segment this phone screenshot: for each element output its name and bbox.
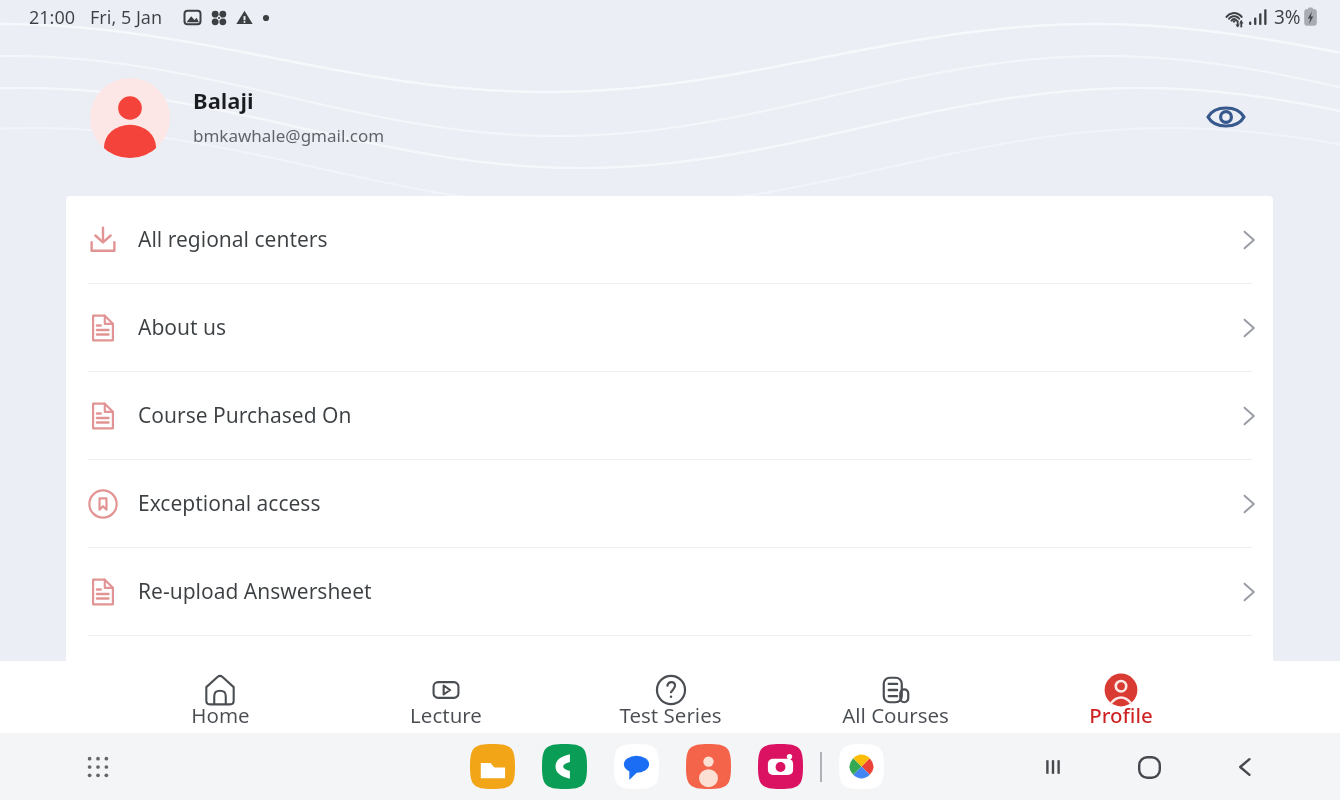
button[interactable]: Phone [542,744,587,789]
staticText: Profile [1089,701,1153,725]
button[interactable]: Re-upload Answersheet [66,548,1273,636]
button[interactable]: Privacy policy [66,636,1273,724]
button[interactable]: Profile [1008,661,1233,733]
button[interactable]: All Courses [783,661,1008,733]
button[interactable]: Course Purchased On [66,372,1273,460]
button[interactable]: Messages [614,744,659,789]
button[interactable]: Back [1222,744,1268,790]
staticText: 3% [1274,4,1301,30]
staticText: Course Purchased On [138,401,352,430]
button[interactable]: Recents [1030,744,1076,790]
button[interactable]: Camera [758,744,803,789]
button[interactable]: Exceptional access [66,460,1273,548]
button[interactable]: About us [66,284,1273,372]
staticText: About us [138,313,227,342]
staticText: Balaji [193,85,254,115]
button[interactable]: Home [107,661,333,733]
staticText: Privacy policy [138,665,271,694]
staticText: bmkawhale@gmail.com [193,124,385,147]
staticText: Test Series [619,701,722,725]
button[interactable]: Lecture [333,661,558,733]
staticText: Lecture [410,701,482,725]
button[interactable]: Photos [839,744,884,789]
button[interactable]: Test Series [558,661,783,733]
staticText: Home [191,701,250,725]
staticText: Fri, 5 Jan [90,5,163,30]
button[interactable]: My Files [470,744,515,789]
button[interactable]: Show hidden details [1205,96,1247,138]
button[interactable]: All regional centers [66,196,1273,284]
staticText: 21:00 [29,5,76,30]
staticText: All Courses [842,701,949,725]
staticText: All regional centers [138,225,328,254]
staticText: Re-upload Answersheet [138,577,372,606]
button[interactable]: Home [1126,744,1172,790]
button[interactable]: Contacts [686,744,731,789]
button[interactable]: Apps [76,745,120,789]
staticText: Exceptional access [138,489,321,518]
button[interactable]: Terms and conditions [66,724,1273,800]
